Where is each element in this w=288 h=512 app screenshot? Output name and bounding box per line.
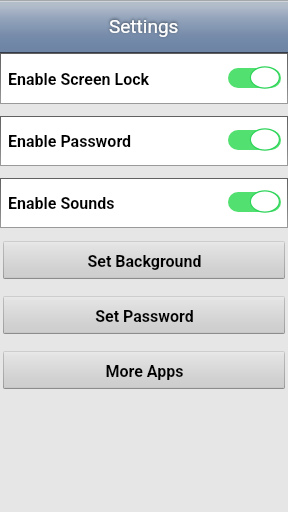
staticText: Set Password	[95, 307, 194, 326]
button[interactable]: Toggle setting	[228, 67, 281, 91]
button[interactable]: Enable Password	[1, 117, 287, 165]
staticText: Settings	[109, 15, 179, 37]
button[interactable]: Toggle setting	[228, 129, 281, 153]
staticText: Enable Sounds	[8, 194, 115, 213]
button[interactable]: Set Background	[4, 242, 284, 278]
button[interactable]: More Apps	[4, 352, 284, 388]
staticText: Enable Password	[8, 132, 132, 151]
button[interactable]: Toggle setting	[228, 191, 281, 215]
button[interactable]: Enable Sounds	[1, 179, 287, 227]
button[interactable]: Set Password	[4, 297, 284, 333]
staticText: More Apps	[105, 362, 184, 381]
staticText: Set Background	[87, 252, 202, 271]
button[interactable]: Enable Screen Lock	[1, 54, 287, 103]
staticText: Enable Screen Lock	[8, 70, 150, 89]
